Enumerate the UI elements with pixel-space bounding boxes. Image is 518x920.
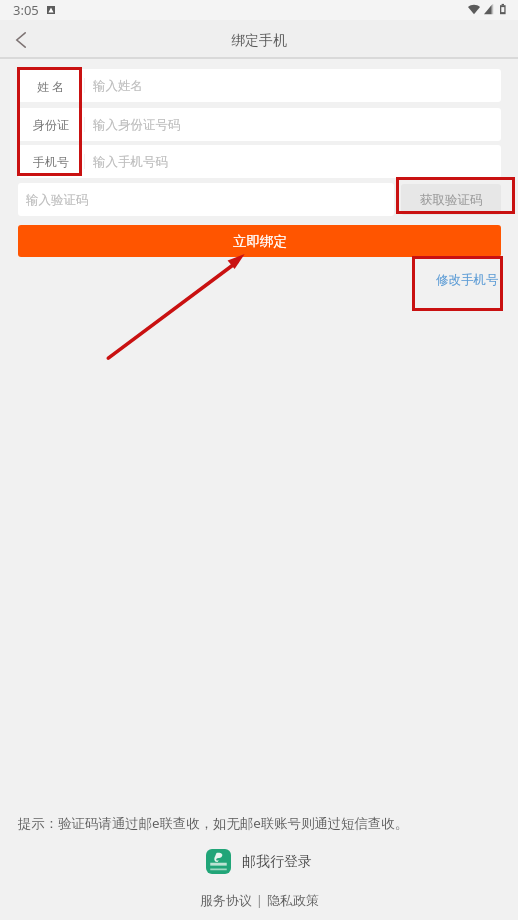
staticText: 输入姓名: [93, 78, 143, 94]
staticText: 姓 名: [37, 78, 65, 94]
button[interactable]: 立即绑定: [18, 225, 501, 257]
button[interactable]: 身份证: [18, 108, 501, 141]
staticText: 手机号: [33, 154, 69, 169]
staticText: 输入验证码: [26, 192, 89, 208]
button[interactable]: 获取验证码: [401, 184, 501, 215]
staticText: 隐私政策: [267, 892, 319, 908]
staticText: 邮我行登录: [242, 853, 312, 871]
staticText: 立即绑定: [233, 233, 287, 250]
button[interactable]: 邮我行登录: [206, 849, 312, 874]
button[interactable]: 隐私政策: [267, 892, 319, 908]
staticText: 输入身份证号码: [93, 117, 181, 133]
staticText: |: [256, 892, 263, 908]
button[interactable]: 姓 名: [18, 69, 501, 102]
button[interactable]: 输入验证码: [18, 183, 394, 216]
staticText: 输入手机号码: [93, 154, 168, 170]
staticText: 提示：验证码请通过邮e联查收，如无邮e联账号则通过短信查收。: [18, 814, 409, 832]
staticText: 修改手机号: [436, 272, 499, 288]
staticText: 绑定手机: [231, 32, 287, 50]
staticText: 获取验证码: [420, 192, 483, 208]
staticText: 身份证: [33, 117, 69, 132]
button[interactable]: 手机号: [18, 145, 501, 178]
staticText: 服务协议: [200, 892, 252, 908]
button[interactable]: 服务协议: [200, 892, 252, 908]
button[interactable]: 修改手机号: [428, 266, 507, 294]
staticText: 3:05: [13, 1, 39, 19]
button[interactable]: Back: [0, 20, 42, 57]
